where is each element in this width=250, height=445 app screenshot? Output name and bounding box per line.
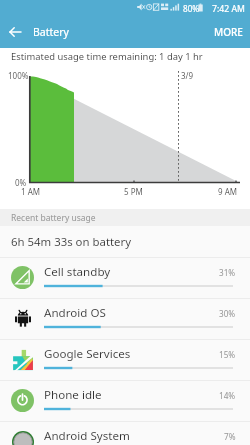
staticText: 5 PM [124, 186, 143, 197]
staticText: MORE [214, 25, 243, 39]
staticText: 7:42 AM [212, 3, 245, 15]
staticText: 100% [8, 70, 29, 81]
staticText: 15% [219, 349, 236, 360]
button[interactable]: Back [3, 16, 27, 48]
staticText: 31% [219, 267, 236, 278]
button[interactable]: MORE [207, 16, 250, 48]
staticText: Estimated usage time remaining: 1 day 1 … [11, 50, 203, 63]
button[interactable]: 6h 54m 33s on battery [0, 226, 250, 257]
staticText: Recent battery usage [11, 212, 96, 224]
staticText: Android OS [44, 305, 106, 321]
staticText: Android System [44, 428, 130, 444]
staticText: Google Services [44, 346, 131, 362]
staticText: Battery [33, 25, 69, 39]
staticText: 80% [183, 3, 200, 14]
staticText: 7% [224, 431, 236, 442]
staticText: 14% [219, 390, 236, 401]
staticText: 9 AM [218, 186, 238, 197]
staticText: 0% [15, 177, 27, 188]
staticText: 6h 54m 33s on battery [11, 234, 132, 250]
staticText: Cell standby [44, 264, 111, 280]
button[interactable]: Phone idle [0, 381, 250, 421]
button[interactable]: Android System [0, 422, 250, 445]
staticText: Phone idle [44, 387, 102, 403]
button[interactable]: Cell standby [0, 258, 250, 298]
staticText: 30% [219, 308, 236, 319]
staticText: 3/9 [181, 70, 194, 81]
button[interactable]: Android OS [0, 299, 250, 339]
staticText: 1 AM [21, 186, 41, 197]
button[interactable]: Google Services [0, 340, 250, 380]
